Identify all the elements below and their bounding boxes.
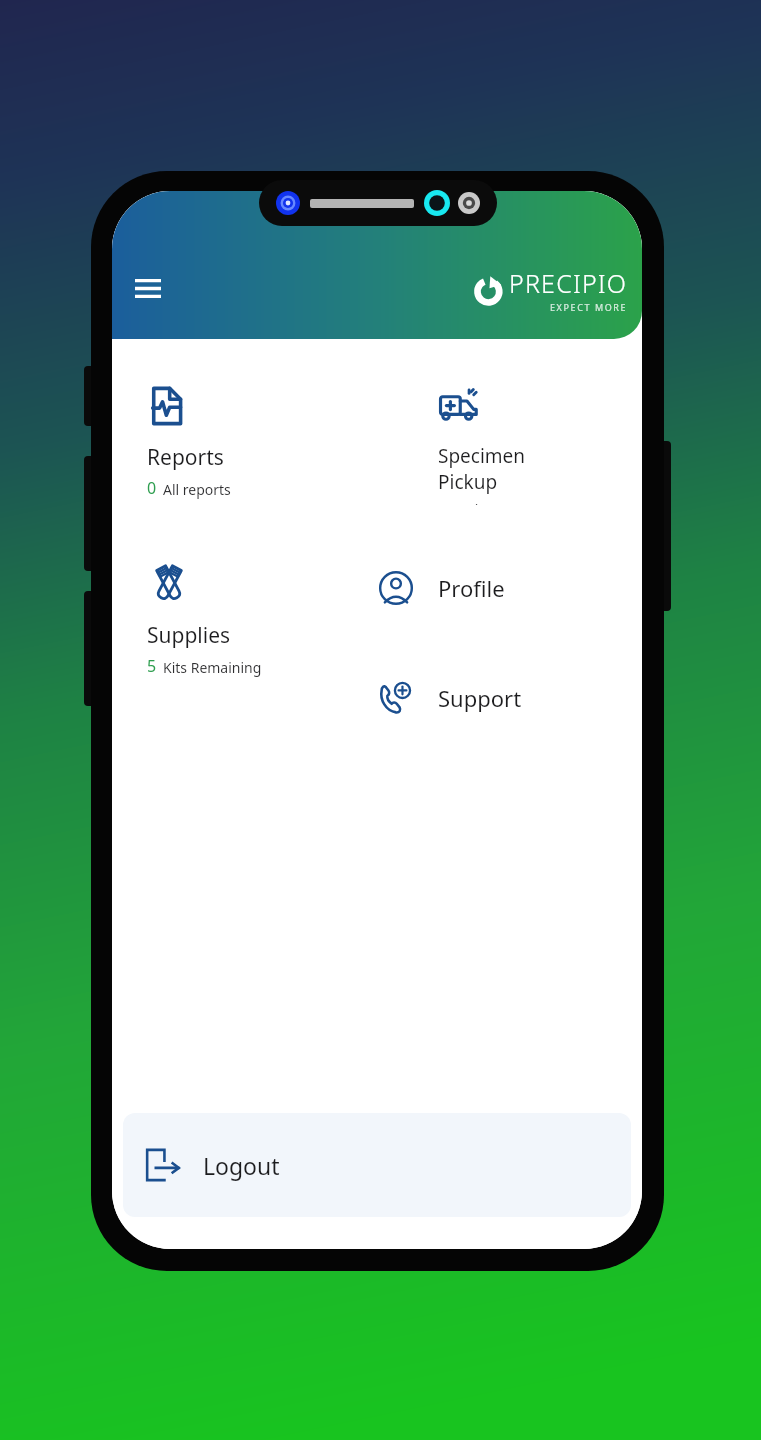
staticText: Support <box>438 683 522 713</box>
staticText: Supplies <box>147 621 231 650</box>
staticText: Reports <box>147 443 224 472</box>
staticText: Kits Remaining <box>163 658 262 677</box>
staticText: EXPECT MORE <box>550 301 628 313</box>
button[interactable]: Supplies <box>123 539 348 746</box>
button[interactable]: Logout <box>123 1113 631 1217</box>
button[interactable]: Support <box>356 649 631 746</box>
button[interactable]: Specimen <box>414 363 631 523</box>
staticText: PRECIPIO <box>509 266 628 300</box>
staticText: Profile <box>438 573 505 603</box>
button[interactable]: Profile <box>356 539 631 636</box>
staticText: Specimen <box>438 443 526 469</box>
staticText: 5 <box>147 655 157 677</box>
staticText: Active <box>454 500 494 505</box>
staticText: Pickup <box>438 469 498 495</box>
staticText: 0 <box>147 477 157 499</box>
staticText: All reports <box>163 480 231 499</box>
staticText: Logout <box>203 1150 280 1181</box>
button[interactable]: Menu <box>131 271 165 305</box>
button[interactable]: Reports <box>123 363 406 523</box>
